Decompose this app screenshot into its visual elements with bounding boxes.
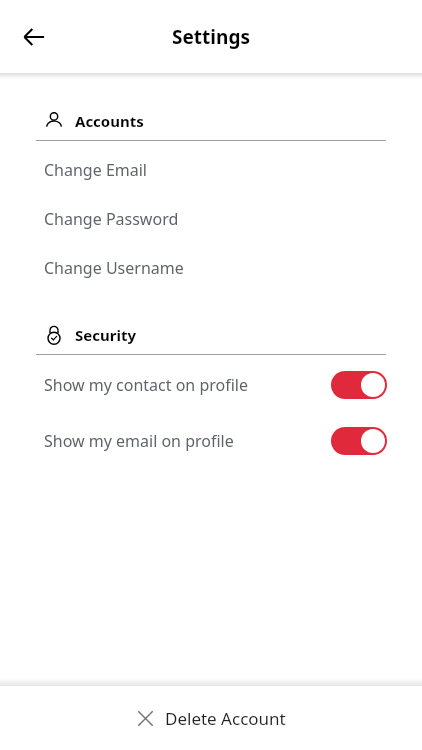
- staticText: Accounts: [75, 111, 144, 131]
- staticText: Delete Account: [165, 707, 286, 730]
- staticText: Change Email: [44, 159, 147, 181]
- button[interactable]: Back: [12, 15, 56, 59]
- staticText: Settings: [172, 24, 250, 50]
- button[interactable]: Change Email: [0, 157, 422, 183]
- button[interactable]: Show my contact on profile: [331, 371, 387, 399]
- staticText: Show my email on profile: [44, 430, 234, 452]
- staticText: Show my contact on profile: [44, 374, 248, 396]
- button[interactable]: Change Username: [0, 255, 422, 281]
- staticText: Change Password: [44, 208, 179, 230]
- button[interactable]: Show my email on profile: [331, 427, 387, 455]
- staticText: Change Username: [44, 257, 184, 279]
- button[interactable]: Show my contact on profile: [0, 367, 422, 403]
- staticText: Security: [75, 325, 136, 345]
- button[interactable]: Delete Account: [0, 686, 422, 750]
- button[interactable]: Show my email on profile: [0, 423, 422, 459]
- button[interactable]: Change Password: [0, 206, 422, 232]
